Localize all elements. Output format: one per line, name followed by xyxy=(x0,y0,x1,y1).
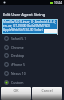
button[interactable]: OK xyxy=(1,87,31,100)
staticText: AppleWebKit/534.30 Safari xyxy=(3,28,43,32)
staticText: 10:24 xyxy=(54,1,63,5)
button[interactable]: Desktop xyxy=(0,51,64,60)
staticText: Safari/5.1 xyxy=(11,36,27,41)
button[interactable]: Safari/5.1 xyxy=(0,34,64,43)
staticText: en-us; GT-I9300 Build/IMM76D) xyxy=(3,24,50,28)
staticText: Edit User Agent String xyxy=(3,12,46,17)
staticText: iPhone 5 xyxy=(11,62,25,67)
staticText: Desktop xyxy=(11,53,25,58)
staticText: Custom xyxy=(11,80,24,85)
staticText: Chrome xyxy=(11,45,24,50)
button[interactable]: Mozilla/5.0 (Linux; U; Android 4.0.4; xyxy=(2,19,58,34)
staticText: OK xyxy=(13,88,19,93)
button[interactable]: Cancel xyxy=(32,87,62,100)
button[interactable]: Chrome xyxy=(0,43,64,52)
button[interactable]: iPhone 5 xyxy=(0,60,64,69)
button[interactable]: Nexus 10 xyxy=(0,69,64,78)
button[interactable]: Custom xyxy=(0,78,64,87)
staticText: Cancel xyxy=(41,88,53,93)
staticText: Mozilla/5.0 (Linux; U; Android 4.0.4; xyxy=(3,20,56,24)
staticText: Nexus 10 xyxy=(11,71,26,76)
